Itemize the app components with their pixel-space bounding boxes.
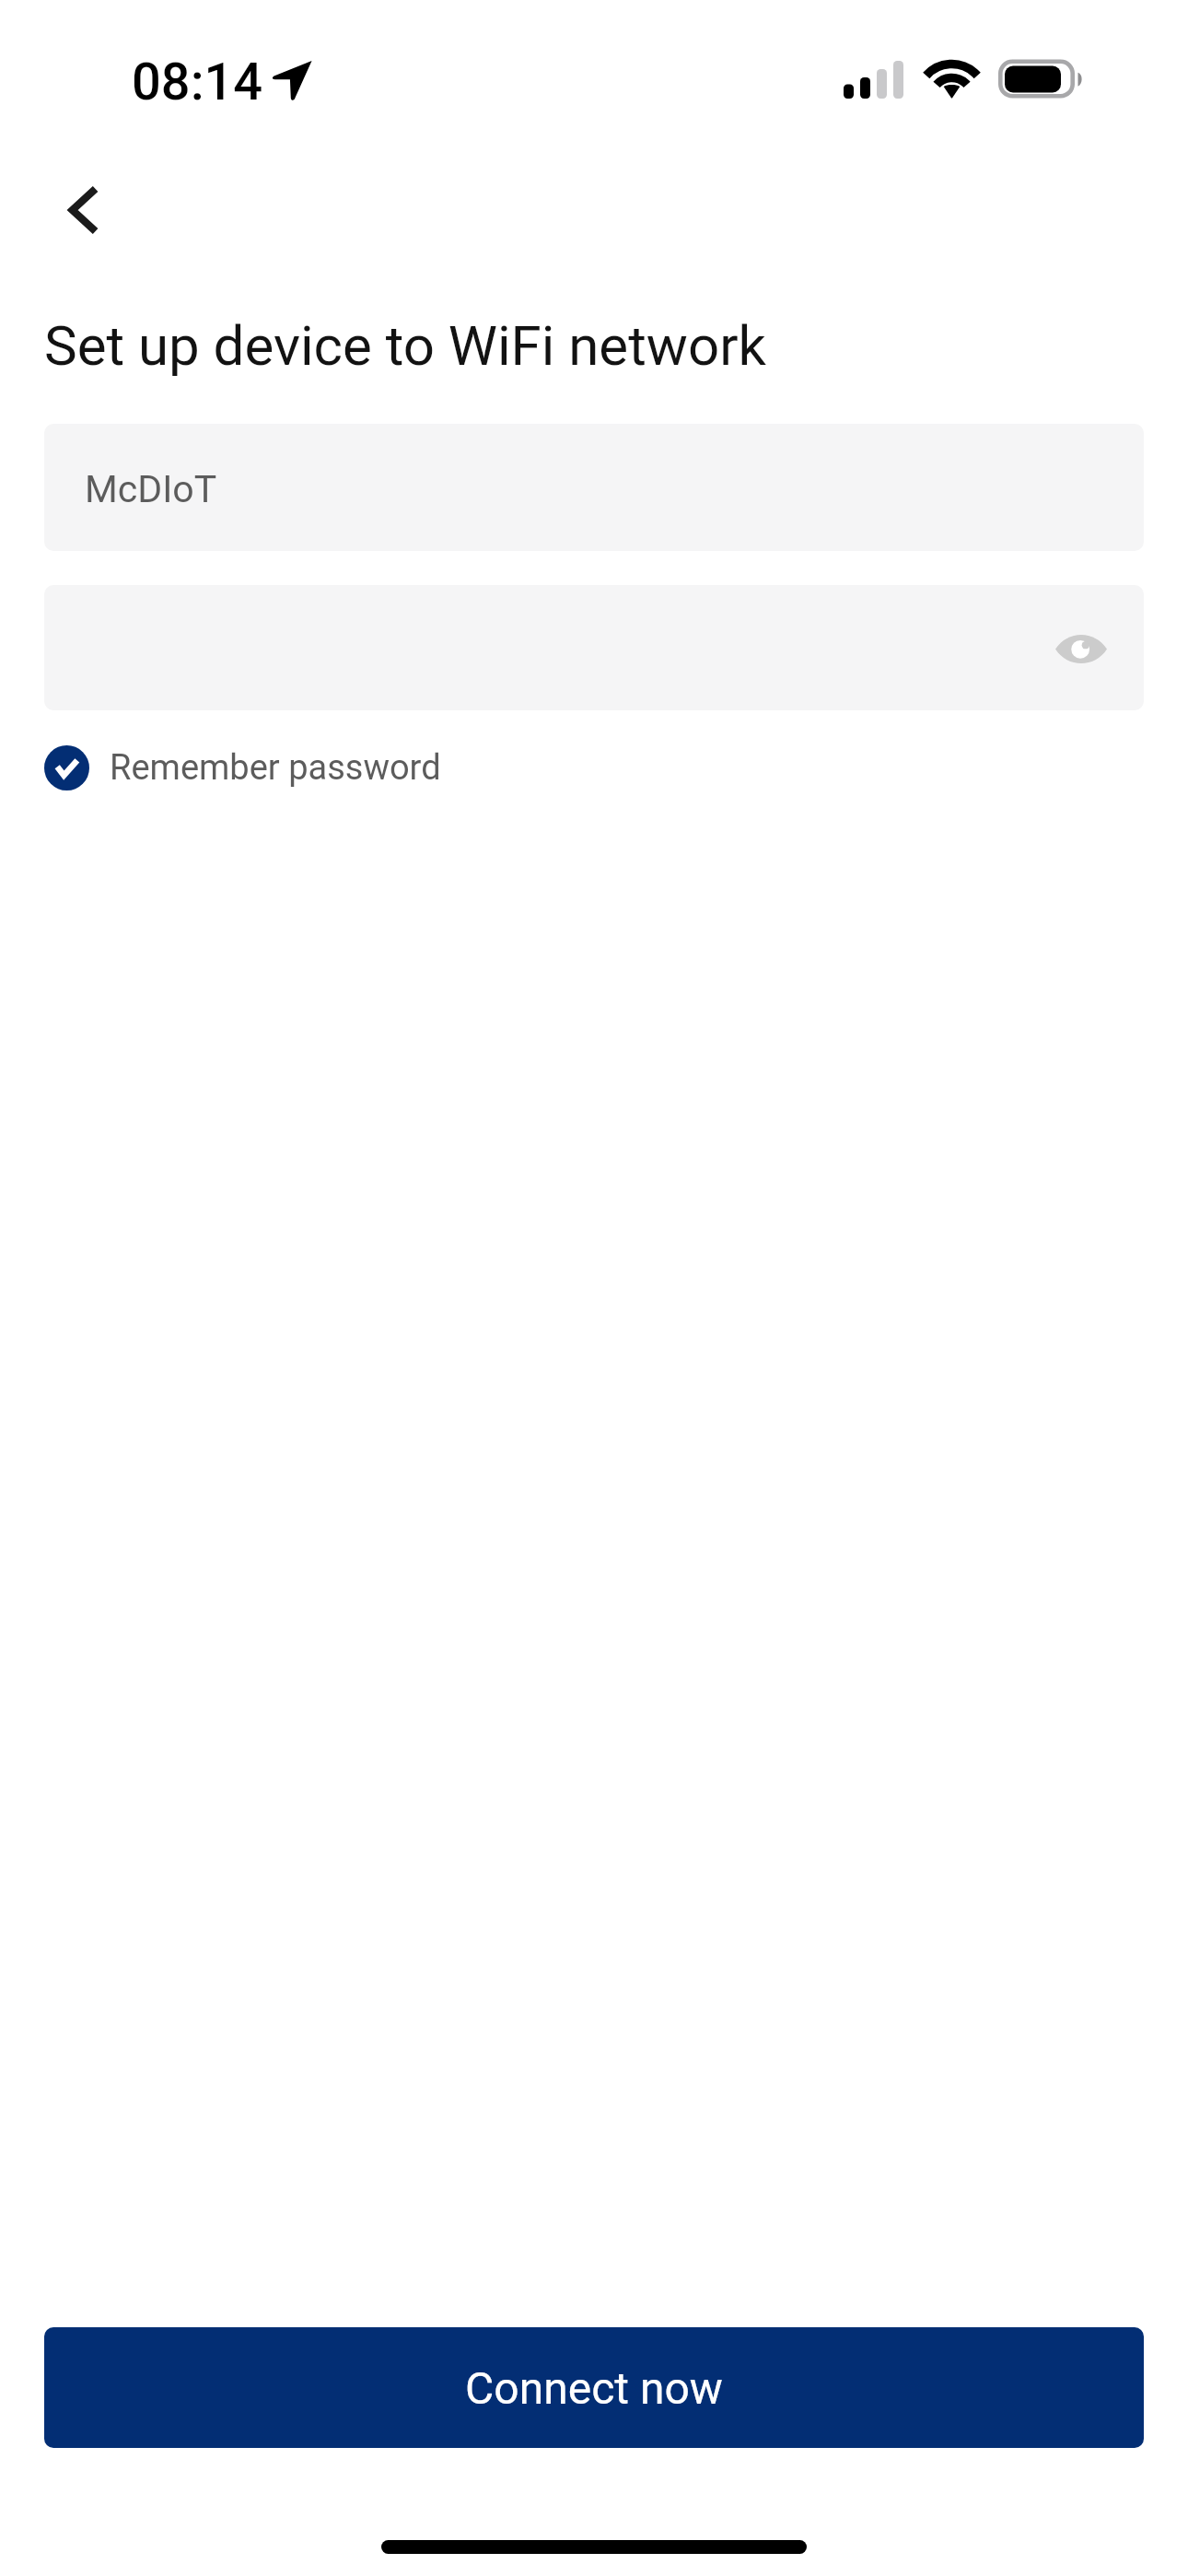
button[interactable]: Remember password [44,736,441,799]
staticText: 08:14 [132,52,263,112]
button[interactable]: Show password [1045,613,1117,685]
button[interactable]: Back [39,166,127,254]
button[interactable]: Show password [44,585,1144,710]
staticText: McDIoT [85,467,217,511]
staticText: Remember password [110,747,441,789]
button[interactable]: McDIoT [44,424,1144,551]
staticText: Set up device to WiFi network [44,313,766,378]
staticText: Connect now [465,2362,723,2414]
button[interactable]: Connect now [44,2327,1144,2448]
